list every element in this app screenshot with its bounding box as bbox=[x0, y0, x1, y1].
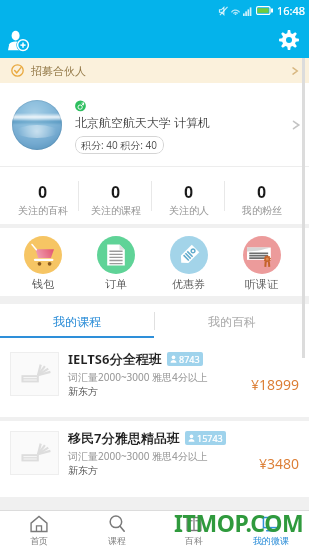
button[interactable]: 移民7分雅思精品班 bbox=[0, 421, 309, 497]
button[interactable]: 钱包 bbox=[7, 228, 79, 296]
button[interactable]: Settings bbox=[275, 26, 303, 54]
staticText: 词汇量2000~3000 雅思4分以上 bbox=[68, 370, 208, 384]
button[interactable]: 北京航空航天大学 计算机 bbox=[0, 83, 309, 166]
button[interactable]: 我的微课 bbox=[232, 511, 309, 550]
staticText: 0 bbox=[38, 181, 48, 203]
staticText: 我的微课 bbox=[253, 535, 289, 546]
button[interactable]: 订单 bbox=[79, 228, 152, 296]
staticText: 优惠券 bbox=[172, 277, 205, 291]
button[interactable]: IELTS6分全程班 bbox=[0, 338, 309, 417]
staticText: 关注的人 bbox=[169, 204, 209, 217]
staticText: 0 bbox=[257, 181, 267, 203]
button[interactable]: 优惠券 bbox=[152, 228, 225, 296]
staticText: ITMOP.COM bbox=[174, 507, 304, 538]
staticText: 积分: 40 积分: 40 bbox=[81, 138, 158, 152]
staticText: ¥3480 bbox=[259, 454, 300, 473]
button[interactable]: 首页 bbox=[0, 511, 78, 550]
staticText: 北京航空航天大学 计算机 bbox=[75, 114, 211, 130]
button[interactable]: 招募合伙人 bbox=[0, 58, 309, 83]
button[interactable]: 我的百科 bbox=[154, 304, 309, 338]
staticText: 关注的百科 bbox=[18, 204, 68, 217]
button[interactable]: 课程 bbox=[78, 511, 155, 550]
button[interactable]: 0 bbox=[79, 167, 152, 224]
staticText: 听课证 bbox=[245, 277, 278, 291]
button[interactable]: 我的课程 bbox=[0, 304, 154, 338]
staticText: 百科 bbox=[185, 535, 203, 546]
staticText: 课程 bbox=[108, 535, 126, 546]
staticText: 16:48 bbox=[277, 3, 306, 18]
staticText: 新东方 bbox=[68, 385, 98, 398]
staticText: 我的课程 bbox=[53, 314, 101, 329]
staticText: 15743 bbox=[197, 432, 223, 444]
staticText: 8743 bbox=[179, 353, 200, 365]
staticText: 钱包 bbox=[32, 277, 54, 291]
button[interactable]: 听课证 bbox=[225, 228, 298, 296]
staticText: 订单 bbox=[105, 277, 127, 291]
staticText: 移民7分雅思精品班 bbox=[68, 429, 180, 447]
staticText: 我的粉丝 bbox=[242, 204, 282, 217]
staticText: ¥18999 bbox=[251, 375, 300, 394]
staticText: 新东方 bbox=[68, 464, 98, 477]
staticText: 0 bbox=[184, 181, 194, 203]
button[interactable]: 百科 bbox=[155, 511, 232, 550]
staticText: 0 bbox=[111, 181, 121, 203]
staticText: 词汇量2000~3000 雅思4分以上 bbox=[68, 449, 208, 463]
staticText: 关注的课程 bbox=[91, 204, 141, 217]
staticText: 首页 bbox=[30, 535, 48, 546]
staticText: IELTS6分全程班 bbox=[68, 350, 162, 368]
button[interactable]: 0 bbox=[225, 167, 298, 224]
staticText: 招募合伙人 bbox=[31, 64, 86, 78]
button[interactable]: 0 bbox=[152, 167, 225, 224]
button[interactable]: Add friend bbox=[4, 26, 32, 54]
staticText: 我的百科 bbox=[208, 314, 256, 329]
button[interactable]: 0 bbox=[7, 167, 79, 224]
